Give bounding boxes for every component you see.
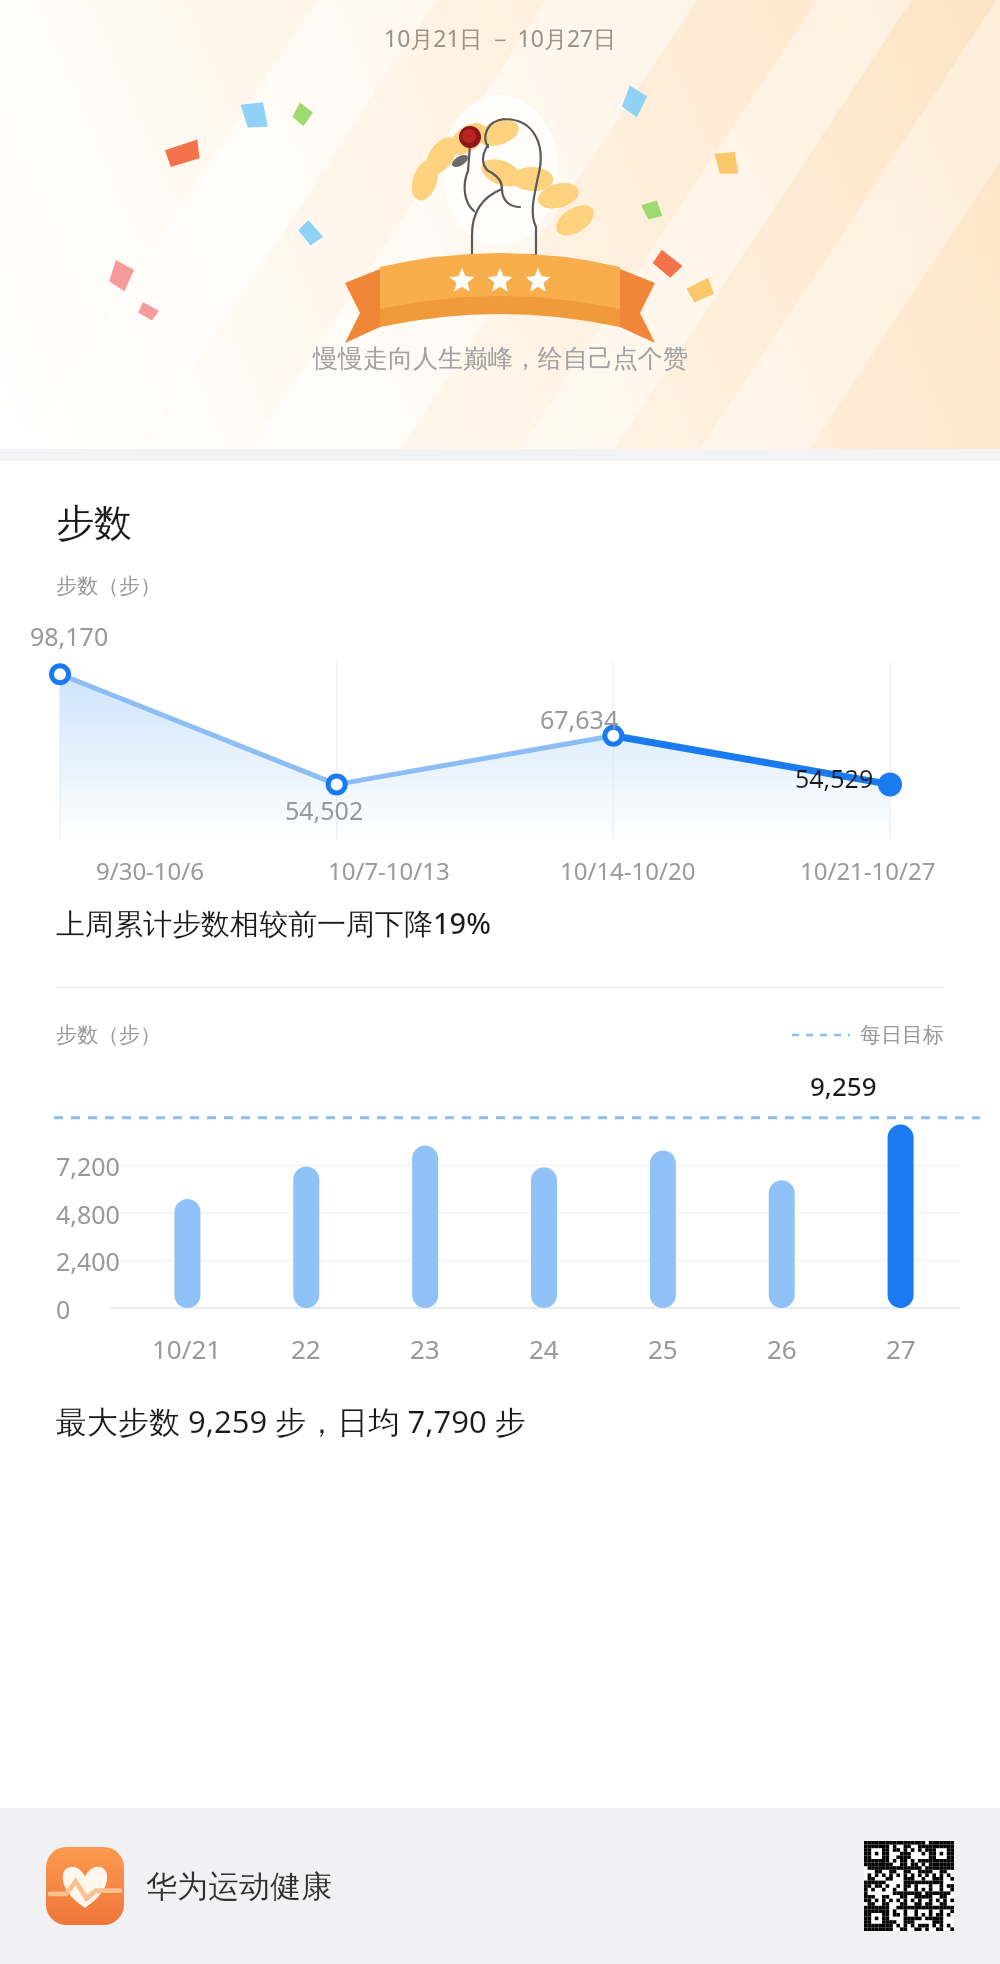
staticText: 9,259 (810, 1068, 877, 1103)
staticText: 步数（步） (56, 1022, 161, 1048)
staticText: 0 (56, 1292, 71, 1326)
staticText: 步数（步） (56, 573, 161, 599)
staticText: 24 (529, 1331, 559, 1366)
staticText: 26 (767, 1331, 797, 1366)
staticText: 慢慢走向人生巅峰，给自己点个赞 (313, 343, 688, 374)
staticText: 华为运动健康 (146, 1867, 332, 1906)
staticText: 98,170 (30, 619, 109, 653)
button[interactable]: 华为运动健康 (46, 1847, 332, 1925)
staticText: 22 (291, 1331, 321, 1366)
other: 华为运动健康 (46, 1847, 124, 1925)
staticText: 10/21-10/27 (800, 854, 936, 887)
staticText: 10/21 (152, 1331, 222, 1366)
staticText: 7,200 (56, 1149, 120, 1183)
other: QR code (864, 1841, 954, 1931)
staticText: 23 (410, 1331, 440, 1366)
staticText: 10月21日 － 10月27日 (384, 22, 617, 53)
staticText: 10/7-10/13 (328, 854, 450, 887)
staticText: 每日目标 (860, 1022, 944, 1048)
staticText: 上周累计步数相较前一周下降19% (56, 903, 491, 943)
staticText: 67,634 (540, 702, 619, 736)
staticText: 10/14-10/20 (560, 854, 696, 887)
staticText: 2,400 (56, 1244, 120, 1278)
staticText: 25 (648, 1331, 678, 1366)
staticText: 4,800 (56, 1197, 120, 1231)
staticText: 54,529 (795, 761, 874, 795)
staticText: 54,502 (285, 793, 364, 827)
staticText: 最大步数 9,259 步，日均 7,790 步 (56, 1400, 526, 1442)
staticText: 27 (886, 1331, 916, 1366)
staticText: 步数 (56, 499, 132, 547)
staticText: 9/30-10/6 (96, 854, 204, 887)
